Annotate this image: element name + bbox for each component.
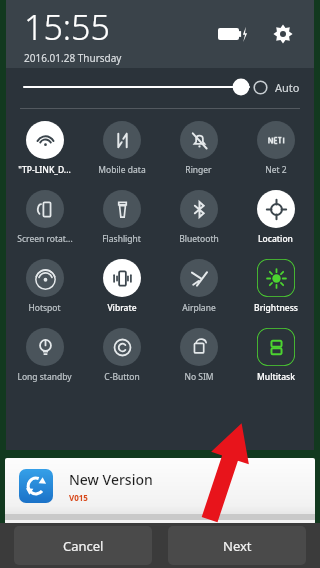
staticText: C-Button xyxy=(104,371,140,383)
staticText: Auto xyxy=(275,80,300,95)
button[interactable]: No SIM xyxy=(160,326,237,385)
button[interactable]: Flashlight xyxy=(83,188,160,247)
button[interactable]: Next xyxy=(168,526,306,565)
staticText: No SIM xyxy=(184,371,214,383)
staticText: Airplane xyxy=(182,302,216,314)
button[interactable]: Location xyxy=(237,188,314,247)
button[interactable]: Brightness xyxy=(237,257,314,316)
staticText: New Version xyxy=(69,470,153,489)
staticText: Vibrate xyxy=(107,302,137,314)
staticText: V015 xyxy=(69,492,88,503)
staticText: Location xyxy=(258,233,293,245)
staticText: Mobile data xyxy=(98,164,146,176)
button[interactable]: Multitask xyxy=(237,326,314,385)
button[interactable]: Ringer xyxy=(160,119,237,178)
button[interactable]: Long standby xyxy=(6,326,83,385)
staticText: Multitask xyxy=(257,371,295,383)
staticText: Bluetooth xyxy=(179,233,219,245)
staticText: Hotspot xyxy=(28,302,61,314)
staticText: "TP-LINK_D... xyxy=(18,164,71,176)
staticText: Net 2 xyxy=(265,164,287,176)
button[interactable]: New Version xyxy=(5,458,315,524)
button[interactable]: C-Button xyxy=(83,326,160,385)
staticText: 15:55 xyxy=(24,4,110,50)
button[interactable]: Vibrate xyxy=(83,257,160,316)
staticText: Brightness xyxy=(254,302,298,314)
staticText: Next xyxy=(223,537,252,555)
button[interactable]: Net 2 xyxy=(237,119,314,178)
button[interactable]: Battery charging xyxy=(216,22,250,46)
button[interactable]: Auto xyxy=(6,68,314,106)
button[interactable]: Screen rotat... xyxy=(6,188,83,247)
staticText: Flashlight xyxy=(102,233,141,245)
button[interactable]: Airplane xyxy=(160,257,237,316)
button[interactable]: Bluetooth xyxy=(160,188,237,247)
staticText: 2016.01.28 Thursday xyxy=(24,51,122,65)
staticText: Ringer xyxy=(185,164,212,176)
button[interactable]: Mobile data xyxy=(83,119,160,178)
staticText: Long standby xyxy=(17,371,72,383)
button[interactable]: "TP-LINK_D... xyxy=(6,119,83,178)
button[interactable]: Settings xyxy=(266,17,300,51)
button[interactable]: Hotspot xyxy=(6,257,83,316)
button[interactable]: Cancel xyxy=(14,526,152,565)
staticText: Screen rotat... xyxy=(17,233,73,245)
staticText: Cancel xyxy=(63,537,104,555)
